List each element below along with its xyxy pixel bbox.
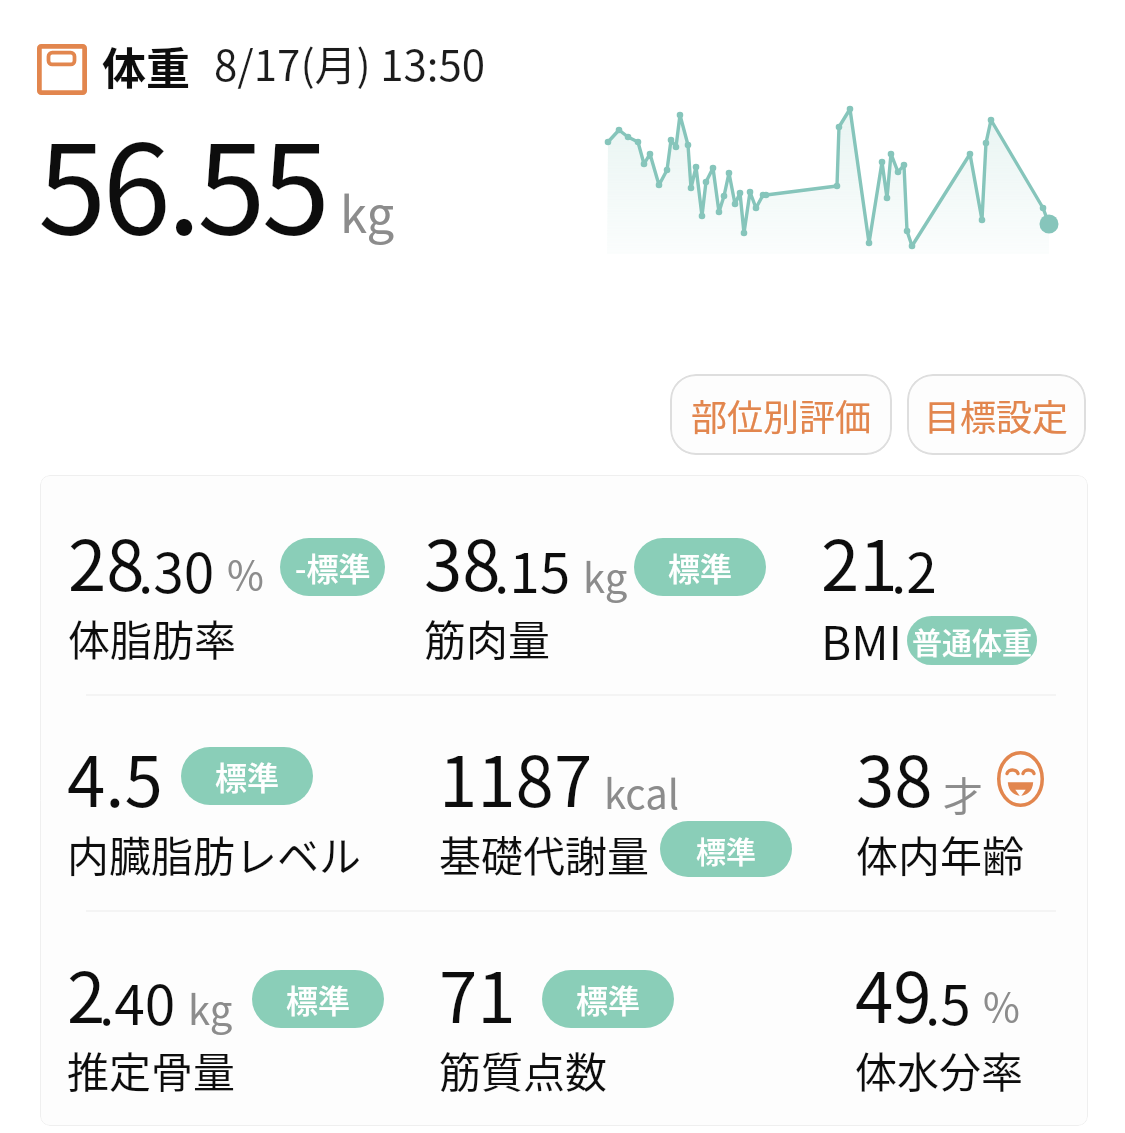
staticText: 標準 xyxy=(668,544,733,590)
button[interactable]: 標準 xyxy=(660,821,792,877)
staticText: 56.55 xyxy=(38,91,327,269)
staticText: 体水分率 xyxy=(855,1039,1024,1100)
staticText: 標準 xyxy=(576,976,641,1022)
staticText: kg xyxy=(188,979,233,1037)
staticText: kg xyxy=(583,547,628,605)
button[interactable] xyxy=(429,713,809,863)
button[interactable]: 標準 xyxy=(181,747,313,805)
staticText: 38 xyxy=(424,511,501,611)
button[interactable]: 標準 xyxy=(634,538,766,596)
staticText: 71 xyxy=(439,943,516,1043)
button[interactable]: 普通体重 xyxy=(907,616,1037,665)
staticText: 標準 xyxy=(696,828,756,871)
staticText: .15 xyxy=(494,529,571,609)
staticText: 目標設定 xyxy=(924,389,1069,441)
button[interactable] xyxy=(57,929,407,1079)
staticText: 標準 xyxy=(215,753,280,799)
staticText: BMI xyxy=(821,607,903,674)
button[interactable]: -標準 xyxy=(280,538,385,596)
staticText: -標準 xyxy=(295,544,371,590)
button[interactable] xyxy=(58,497,408,647)
button[interactable] xyxy=(811,497,1088,647)
staticText: 筋肉量 xyxy=(424,607,551,668)
staticText: 49 xyxy=(855,943,932,1043)
staticText: % xyxy=(227,544,264,602)
button[interactable] xyxy=(429,929,809,1079)
staticText: .2 xyxy=(891,529,937,609)
button[interactable]: 標準 xyxy=(542,970,674,1028)
staticText: 筋質点数 xyxy=(439,1039,608,1100)
staticText: kcal xyxy=(604,763,680,821)
staticText: 2 xyxy=(67,943,106,1043)
staticText: .40 xyxy=(99,961,176,1041)
staticText: 8/17(月) 13:50 xyxy=(214,32,486,93)
staticText: kg xyxy=(340,176,395,247)
staticText: 体脂肪率 xyxy=(68,607,237,668)
staticText: 28 xyxy=(68,511,145,611)
button[interactable] xyxy=(57,713,407,863)
button[interactable] xyxy=(845,929,1088,1079)
staticText: 体重 xyxy=(102,34,190,98)
staticText: 1187 xyxy=(439,727,593,827)
button[interactable]: Body age rating xyxy=(997,751,1044,807)
staticText: 才 xyxy=(943,765,983,823)
button[interactable] xyxy=(846,713,1088,863)
button[interactable]: Weight scale xyxy=(37,44,87,95)
staticText: 4.5 xyxy=(67,727,163,827)
staticText: 部位別評価 xyxy=(691,389,872,441)
button[interactable] xyxy=(414,497,794,647)
staticText: 体内年齢 xyxy=(856,823,1025,884)
button[interactable]: 目標設定 xyxy=(907,374,1086,455)
staticText: 標準 xyxy=(286,976,351,1022)
staticText: .5 xyxy=(925,961,971,1041)
staticText: .30 xyxy=(138,529,215,609)
staticText: 21 xyxy=(821,511,898,611)
staticText: 内臓脂肪レベル xyxy=(67,823,362,884)
button[interactable]: 部位別評価 xyxy=(670,374,892,455)
staticText: % xyxy=(983,976,1020,1034)
staticText: 推定骨量 xyxy=(67,1039,236,1100)
staticText: 普通体重 xyxy=(912,619,1032,662)
button[interactable]: 標準 xyxy=(252,970,384,1028)
staticText: 基礎代謝量 xyxy=(439,823,650,884)
staticText: 38 xyxy=(856,727,933,827)
